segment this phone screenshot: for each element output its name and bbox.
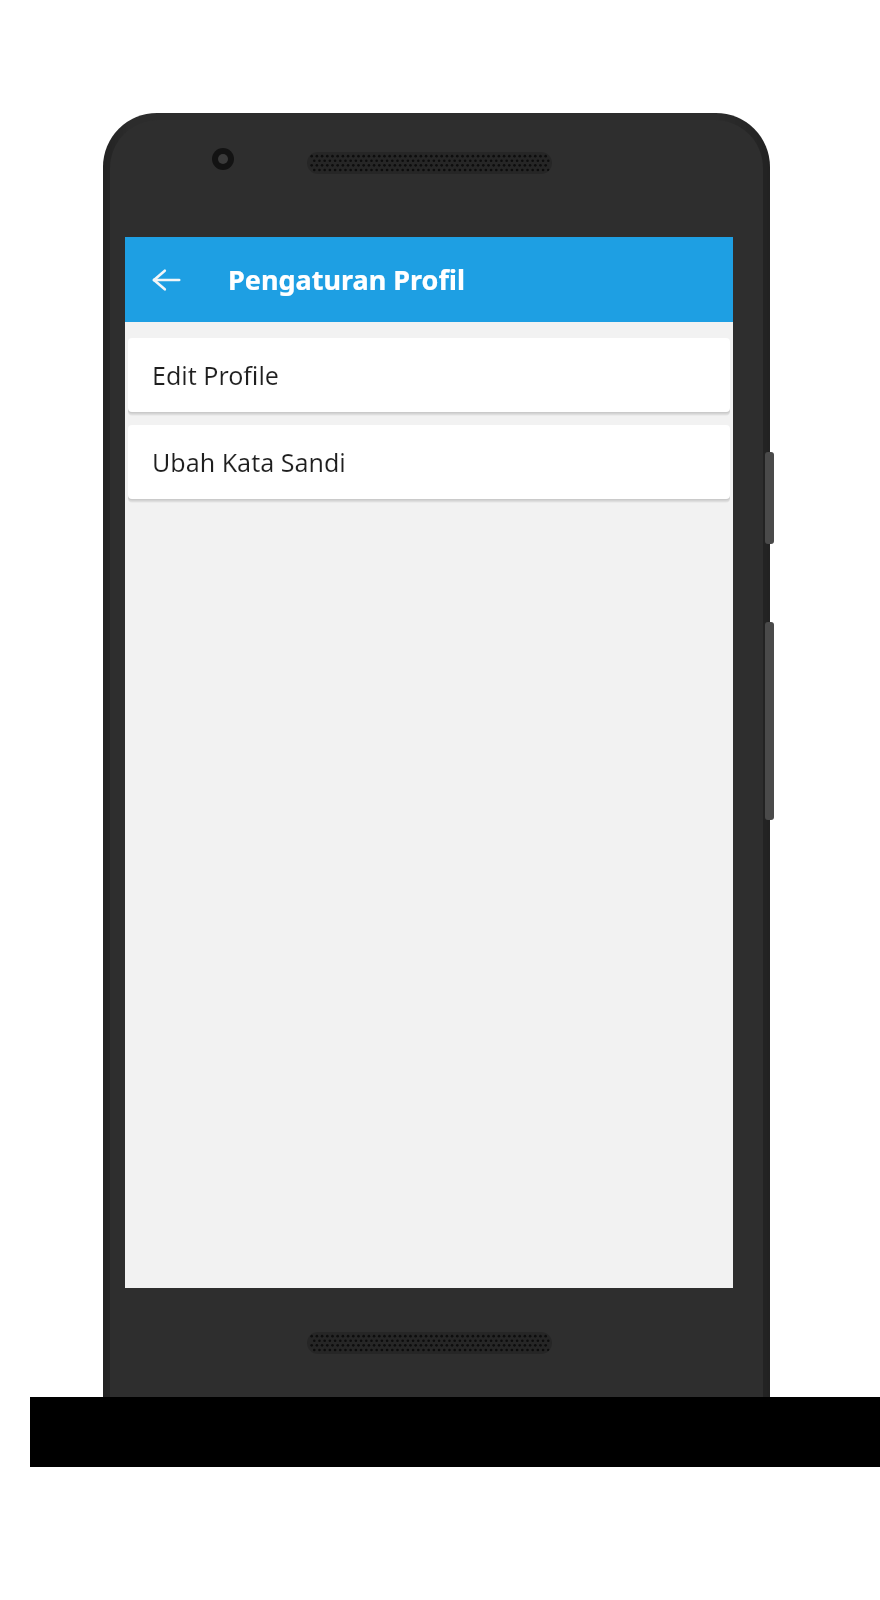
staticText: Ubah Kata Sandi xyxy=(152,445,346,479)
button[interactable]: Edit Profile xyxy=(128,338,730,412)
staticText: Edit Profile xyxy=(152,358,279,392)
staticText: Pengaturan Profil xyxy=(228,261,465,298)
button[interactable]: Back xyxy=(142,256,190,304)
button[interactable]: Ubah Kata Sandi xyxy=(128,425,730,499)
